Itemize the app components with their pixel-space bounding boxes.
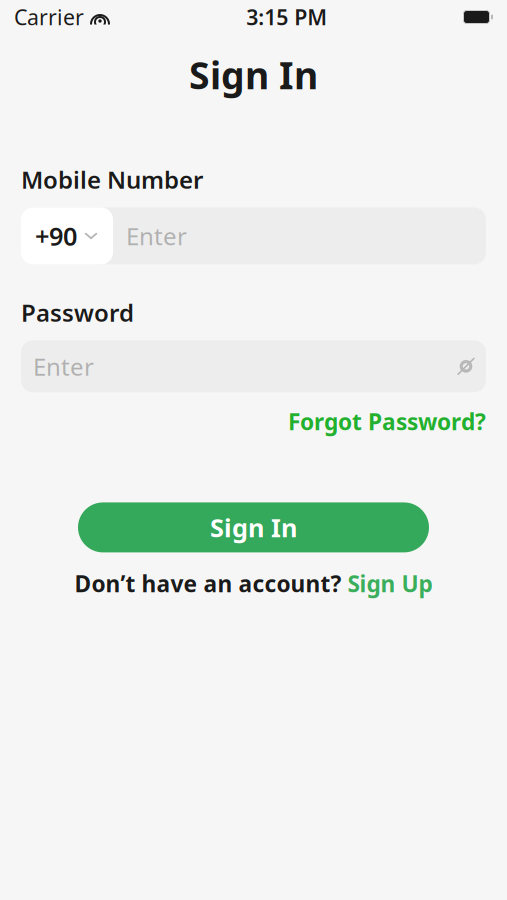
staticText: Forgot Password? xyxy=(288,406,486,436)
button[interactable]: Sign Up xyxy=(347,568,432,598)
staticText: Sign In xyxy=(210,511,297,544)
staticText: Password xyxy=(21,296,134,328)
staticText: Mobile Number xyxy=(21,164,203,195)
staticText: +90 xyxy=(35,219,77,253)
button[interactable]: +90 xyxy=(21,207,113,264)
button[interactable]: Show password xyxy=(446,340,486,392)
staticText: Don’t have an account? xyxy=(74,568,341,598)
button[interactable]: Forgot Password? xyxy=(288,402,486,440)
staticText: Sign Up xyxy=(347,568,432,598)
staticText: Carrier xyxy=(14,3,84,31)
staticText: 3:15 PM xyxy=(246,3,327,31)
button[interactable]: Sign In xyxy=(78,502,429,552)
staticText: Enter xyxy=(126,220,187,252)
staticText: Sign In xyxy=(189,50,318,100)
staticText: Enter xyxy=(33,350,94,382)
